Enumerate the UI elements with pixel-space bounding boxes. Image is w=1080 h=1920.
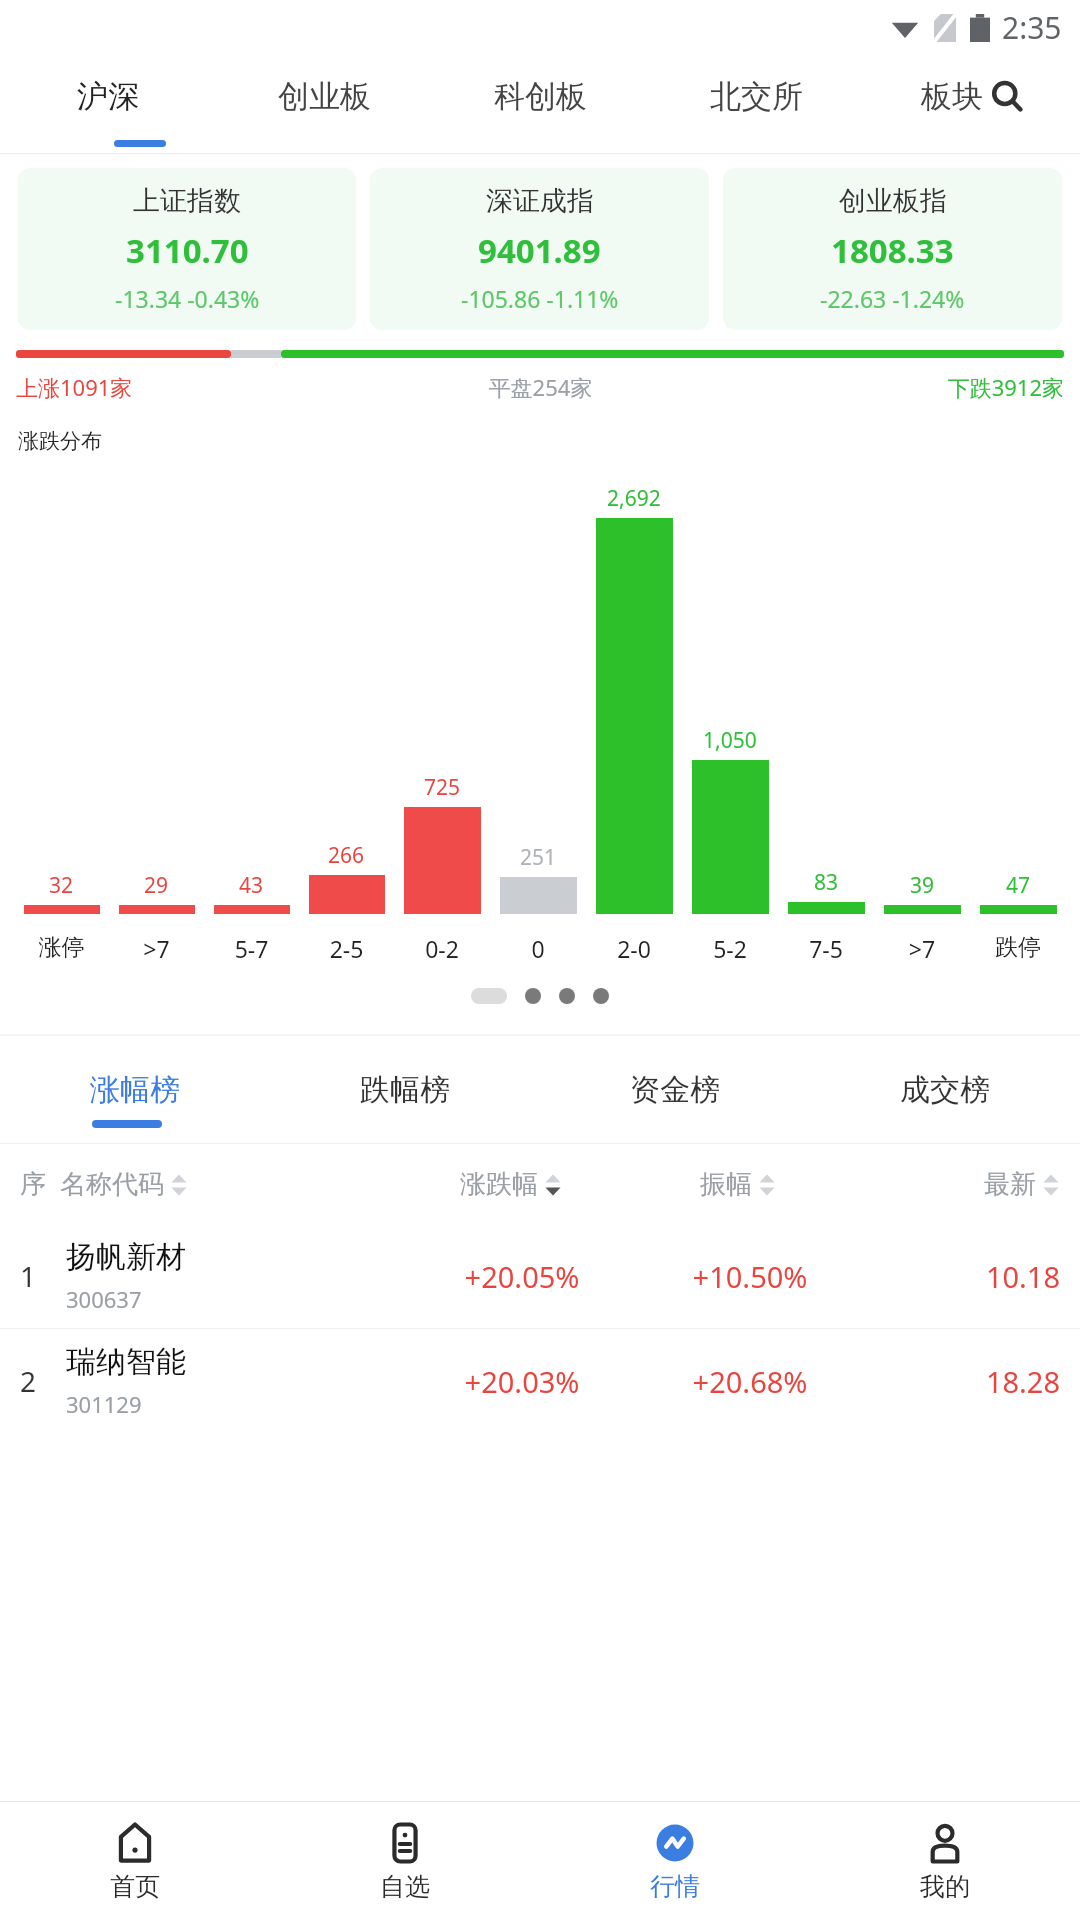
staticText: 涨停 — [14, 933, 109, 962]
staticText: 32 — [49, 871, 74, 900]
button[interactable]: 1 — [0, 1224, 1080, 1328]
button[interactable]: 深证成指 — [370, 168, 709, 330]
staticText: 7-5 — [778, 933, 874, 964]
staticText: 涨跌幅 — [460, 1168, 538, 1201]
other: 自选 — [383, 1821, 427, 1865]
staticText: 涨幅榜 — [90, 1071, 180, 1109]
staticText: 2,692 — [607, 484, 661, 513]
staticText: 沪深 — [77, 77, 139, 116]
staticText: 5-2 — [682, 933, 778, 964]
staticText: +20.68% — [639, 1362, 861, 1401]
staticText: >7 — [109, 933, 204, 964]
other: 我的 — [923, 1821, 967, 1865]
staticText: 创业板 — [278, 77, 371, 116]
button[interactable]: 创业板 — [216, 54, 432, 138]
button[interactable]: 振幅 — [630, 1168, 845, 1201]
staticText: -105.86 -1.11% — [461, 283, 619, 314]
staticText: -13.34 -0.43% — [115, 283, 260, 314]
button[interactable]: 2 — [0, 1329, 1080, 1433]
button[interactable]: 行情 — [540, 1802, 810, 1920]
staticText: 序 — [20, 1168, 46, 1201]
button[interactable]: 涨跌幅 — [391, 1168, 630, 1201]
staticText: 18.28 — [861, 1362, 1060, 1401]
staticText: 科创板 — [494, 77, 587, 116]
staticText: 下跌3912家 — [715, 372, 1064, 402]
staticText: 北交所 — [710, 77, 803, 116]
button[interactable]: 首页 — [0, 1802, 270, 1920]
staticText: 9401.89 — [478, 228, 601, 273]
other: 首页 — [113, 1821, 157, 1865]
staticText: 1 — [20, 1257, 37, 1295]
staticText: 725 — [424, 773, 461, 802]
staticText: +20.05% — [405, 1257, 639, 1296]
staticText: 2:35 — [1002, 7, 1062, 48]
staticText: 最新 — [984, 1168, 1036, 1201]
button[interactable]: 科创板 — [432, 54, 648, 138]
button[interactable]: 板块 — [864, 54, 1080, 138]
button[interactable]: 资金榜 — [540, 1036, 810, 1144]
button[interactable]: 上证指数 — [18, 168, 356, 330]
staticText: 83 — [814, 868, 839, 897]
staticText: 300637 — [66, 1284, 142, 1314]
button[interactable]: 涨幅榜 — [0, 1036, 270, 1144]
staticText: 首页 — [110, 1871, 160, 1902]
staticText: 251 — [520, 843, 557, 872]
staticText: 29 — [144, 871, 169, 900]
staticText: 301129 — [66, 1389, 142, 1419]
staticText: 振幅 — [700, 1168, 752, 1201]
staticText: 43 — [239, 871, 264, 900]
staticText: 创业板指 — [839, 184, 947, 218]
button[interactable]: 创业板指 — [723, 168, 1062, 330]
button[interactable]: 北交所 — [648, 54, 864, 138]
staticText: +20.03% — [405, 1362, 639, 1401]
staticText: 上证指数 — [133, 184, 241, 218]
staticText: 名称代码 — [60, 1168, 164, 1201]
staticText: 成交榜 — [900, 1071, 990, 1109]
staticText: 0 — [490, 933, 586, 964]
staticText: 2 — [20, 1362, 37, 1400]
staticText: +10.50% — [639, 1257, 861, 1296]
staticText: >7 — [874, 933, 970, 964]
staticText: 2-5 — [299, 933, 394, 964]
staticText: 266 — [328, 841, 365, 870]
staticText: 行情 — [650, 1871, 700, 1902]
staticText: 自选 — [380, 1871, 430, 1902]
staticText: 1,050 — [703, 726, 757, 755]
staticText: 39 — [910, 871, 935, 900]
staticText: 跌幅榜 — [360, 1071, 450, 1109]
staticText: 5-7 — [204, 933, 299, 964]
staticText: -22.63 -1.24% — [820, 283, 965, 314]
staticText: 我的 — [920, 1871, 970, 1902]
button[interactable]: 最新 — [845, 1168, 1060, 1201]
other: 行情 — [653, 1821, 697, 1865]
staticText: 瑞纳智能 — [66, 1343, 186, 1381]
button[interactable]: 我的 — [810, 1802, 1080, 1920]
button[interactable]: 沪深 — [0, 54, 216, 138]
staticText: 3110.70 — [126, 228, 249, 273]
button[interactable]: 成交榜 — [810, 1036, 1080, 1144]
staticText: 平盘254家 — [366, 372, 715, 402]
staticText: 扬帆新材 — [66, 1238, 186, 1276]
staticText: 板块 — [921, 77, 983, 116]
staticText: 涨跌分布 — [18, 428, 102, 454]
staticText: 10.18 — [861, 1257, 1060, 1296]
button[interactable]: 序 — [20, 1168, 391, 1201]
button[interactable]: 跌幅榜 — [270, 1036, 540, 1144]
staticText: 0-2 — [394, 933, 490, 964]
staticText: 1808.33 — [831, 228, 954, 273]
staticText: 深证成指 — [486, 184, 594, 218]
staticText: 上涨1091家 — [16, 372, 366, 402]
staticText: 跌停 — [970, 933, 1066, 962]
staticText: 47 — [1006, 871, 1031, 900]
other: Search — [991, 80, 1023, 112]
staticText: 2-0 — [586, 933, 682, 964]
button[interactable]: 自选 — [270, 1802, 540, 1920]
staticText: 资金榜 — [630, 1071, 720, 1109]
